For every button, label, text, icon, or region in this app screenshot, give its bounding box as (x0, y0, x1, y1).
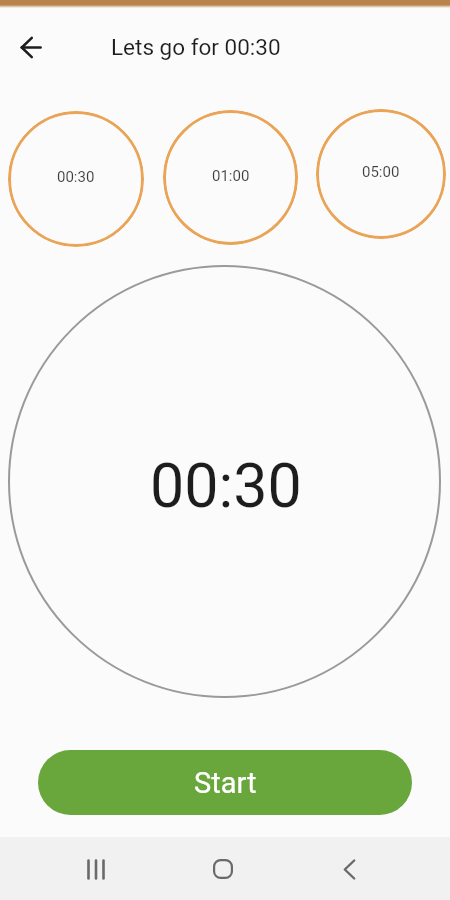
staticText: 00:30 (150, 450, 302, 521)
button[interactable] (199, 845, 247, 893)
button[interactable] (8, 24, 54, 70)
button[interactable]: 05:00 (316, 109, 446, 239)
button[interactable]: 00:30 (8, 111, 144, 247)
staticText: Start (194, 766, 257, 800)
staticText: Lets go for 00:30 (111, 34, 281, 60)
button[interactable]: Start (38, 750, 412, 815)
button[interactable]: 01:00 (163, 110, 298, 245)
staticText: 01:00 (212, 167, 250, 185)
button[interactable] (325, 845, 373, 893)
staticText: 00:30 (57, 168, 95, 186)
button[interactable] (72, 845, 120, 893)
staticText: 05:00 (362, 163, 400, 181)
